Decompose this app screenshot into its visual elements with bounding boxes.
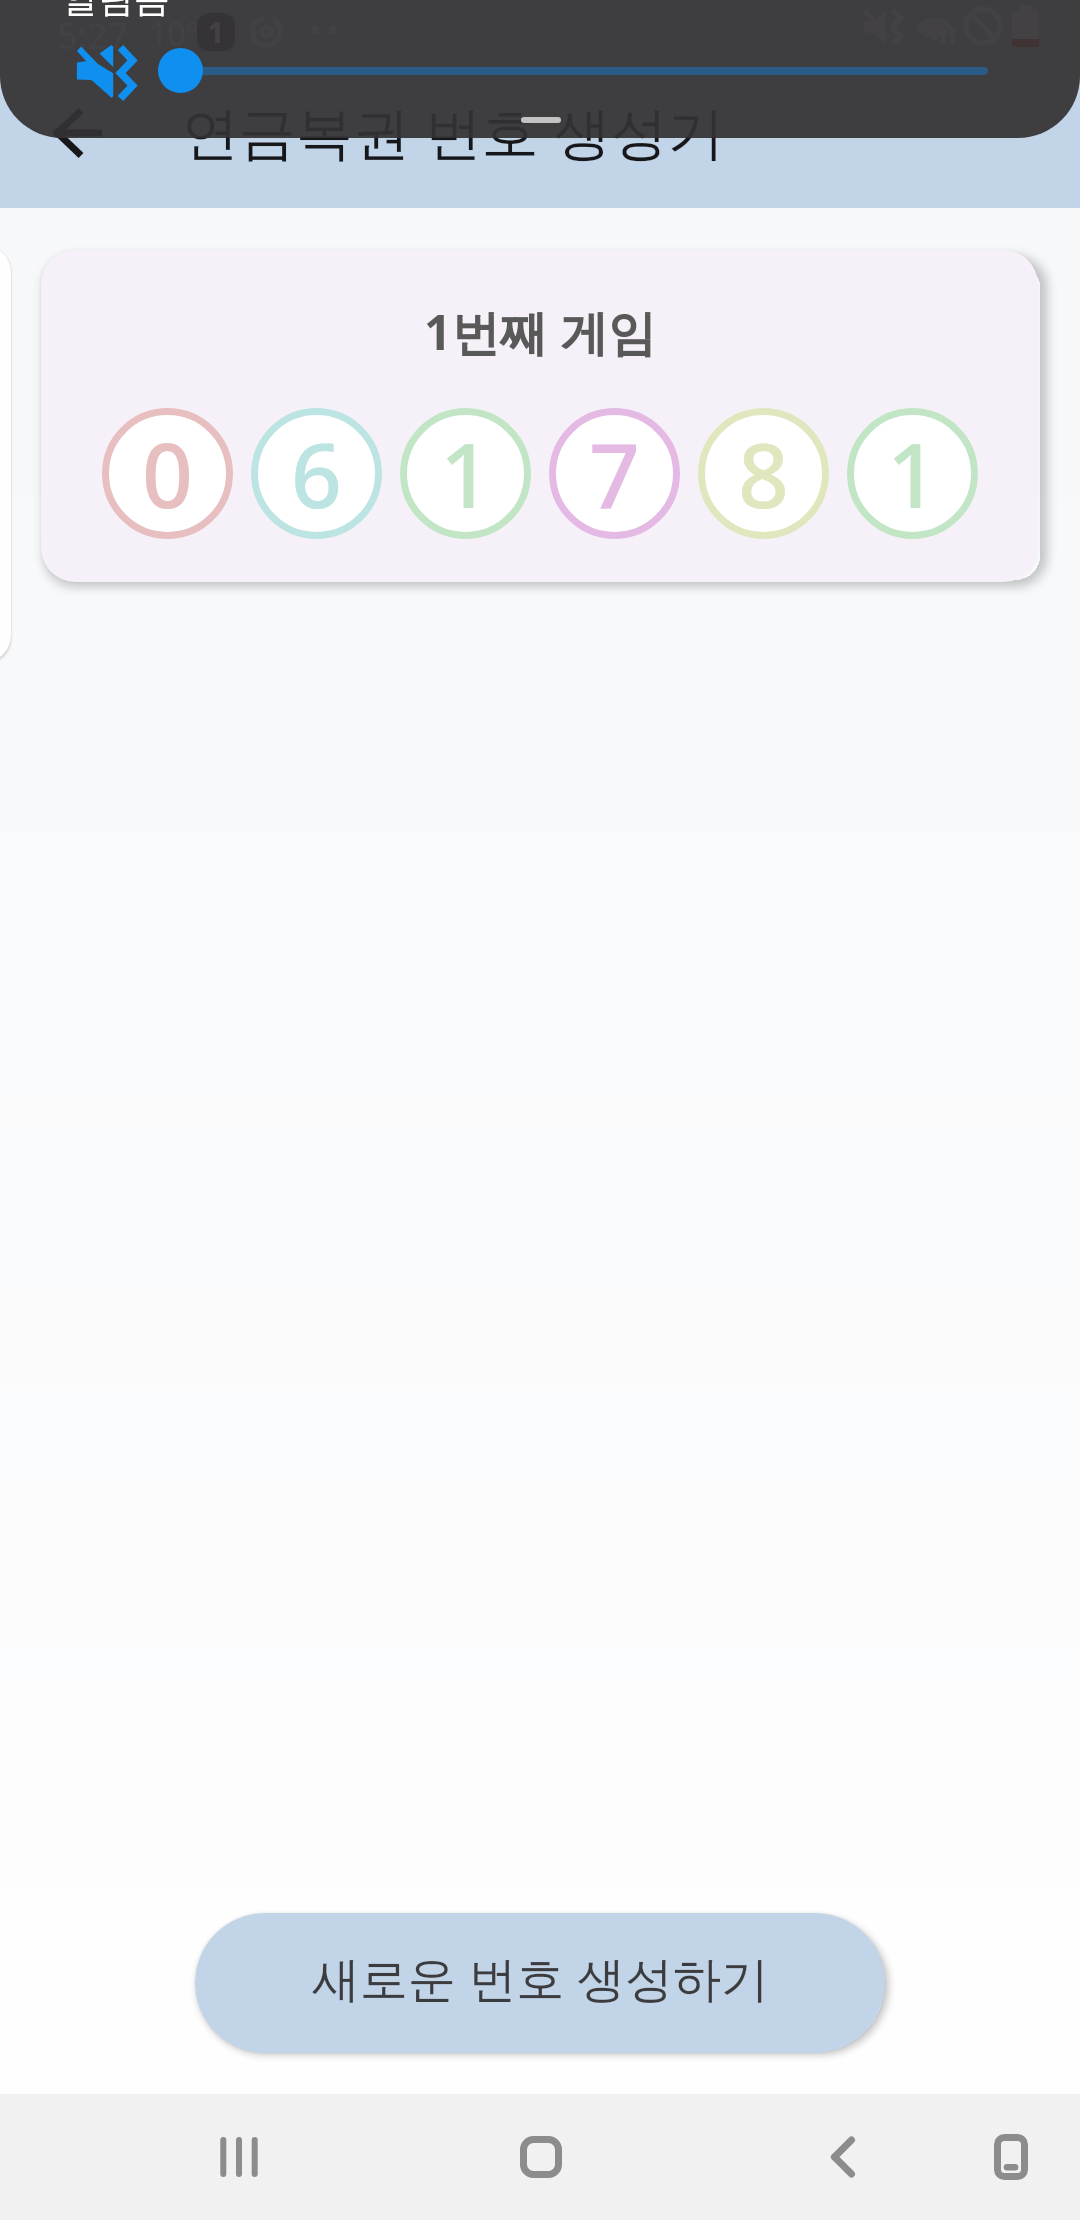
staticText: 5:27	[57, 11, 129, 60]
button[interactable]: Recent apps	[184, 2102, 294, 2212]
staticText: 6	[291, 413, 342, 534]
button[interactable]: 새로운 번호 생성하기	[195, 1913, 885, 2053]
button[interactable]: 1번째 게임	[41, 250, 1038, 582]
staticText: 7	[589, 413, 640, 534]
staticText: 새로운 번호 생성하기	[312, 1945, 769, 2011]
button[interactable]: Home	[486, 2102, 596, 2212]
staticText: 8	[738, 413, 789, 534]
button[interactable]: Back	[788, 2102, 898, 2212]
staticText: 10°	[149, 12, 200, 56]
other: Ringtone muted	[76, 45, 136, 101]
staticText: 0	[142, 413, 193, 534]
staticText: 1	[440, 413, 491, 534]
button[interactable]: Back	[32, 87, 124, 179]
staticText: 1번째 게임	[424, 299, 656, 365]
button[interactable]: Device	[956, 2102, 1066, 2212]
staticText: 연금복권 번호 생성기	[182, 92, 725, 170]
staticText: 1	[887, 413, 938, 534]
staticText: 알림음	[62, 0, 170, 21]
staticText: 1	[208, 13, 225, 51]
